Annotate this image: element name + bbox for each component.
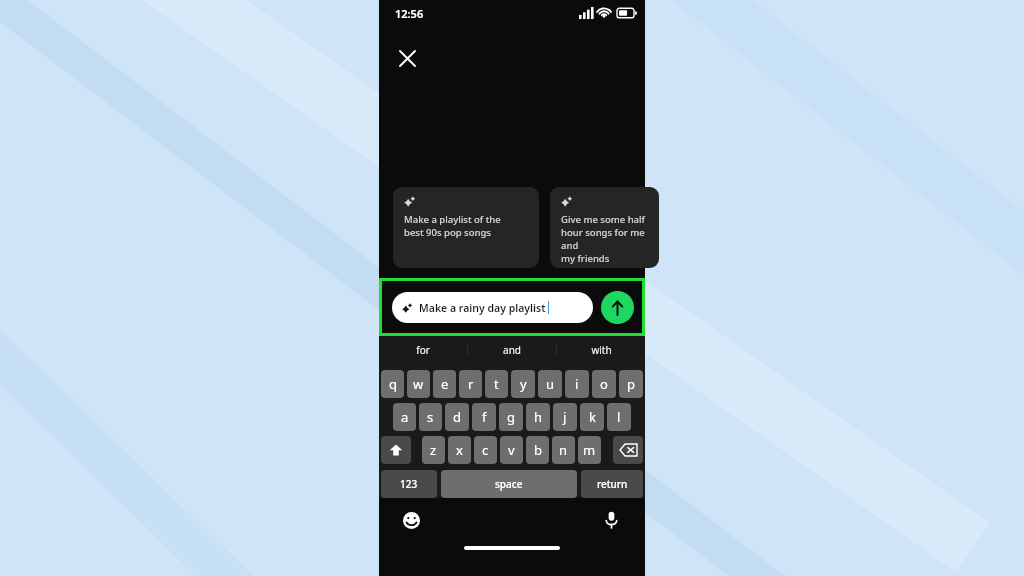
button[interactable]: i <box>565 370 589 398</box>
button[interactable]: a <box>393 403 416 431</box>
staticText: 12:56 <box>395 6 424 21</box>
staticText: m <box>583 441 596 459</box>
staticText: o <box>600 375 608 393</box>
button[interactable]: return <box>581 470 643 498</box>
button[interactable]: w <box>407 370 430 398</box>
staticText: y <box>520 375 527 393</box>
button[interactable]: y <box>511 370 535 398</box>
button[interactable]: Give me some half hour songs for me and … <box>550 187 659 268</box>
staticText: s <box>427 408 434 426</box>
button[interactable]: k <box>580 403 604 431</box>
button[interactable]: Make a rainy day playlist <box>392 292 593 323</box>
staticText: d <box>453 408 461 426</box>
staticText: l <box>617 408 621 426</box>
button[interactable]: e <box>433 370 456 398</box>
button[interactable]: Close <box>387 38 427 78</box>
button[interactable]: Shift <box>381 436 411 464</box>
button[interactable]: u <box>538 370 562 398</box>
staticText: v <box>508 441 515 459</box>
button[interactable]: g <box>499 403 523 431</box>
button[interactable]: z <box>422 436 445 464</box>
staticText: 123 <box>400 477 418 491</box>
staticText: Make a playlist of the best 90s pop song… <box>404 213 501 239</box>
button[interactable]: h <box>526 403 550 431</box>
staticText: g <box>507 408 515 426</box>
button[interactable]: space <box>441 470 577 498</box>
staticText: t <box>494 375 499 393</box>
staticText: p <box>627 375 635 393</box>
button[interactable]: and <box>468 336 556 364</box>
staticText: for <box>416 343 430 357</box>
button[interactable]: o <box>592 370 616 398</box>
button[interactable]: l <box>607 403 631 431</box>
staticText: Make a rainy day playlist <box>419 301 546 315</box>
staticText: w <box>413 375 424 393</box>
button[interactable]: Send <box>601 291 634 324</box>
button[interactable]: s <box>419 403 442 431</box>
button[interactable]: t <box>485 370 508 398</box>
staticText: h <box>534 408 543 426</box>
button[interactable]: j <box>553 403 577 431</box>
button[interactable]: Dictation <box>599 508 623 532</box>
staticText: u <box>546 375 555 393</box>
button[interactable]: p <box>619 370 643 398</box>
button[interactable]: 123 <box>381 470 437 498</box>
staticText: x <box>456 441 463 459</box>
button[interactable]: r <box>459 370 482 398</box>
button[interactable]: c <box>474 436 497 464</box>
staticText: n <box>559 441 568 459</box>
staticText: e <box>441 375 449 393</box>
staticText: f <box>482 408 487 426</box>
staticText: r <box>468 375 474 393</box>
staticText: j <box>563 408 567 426</box>
staticText: b <box>534 441 542 459</box>
button[interactable]: v <box>500 436 523 464</box>
button[interactable]: Backspace <box>613 436 643 464</box>
button[interactable]: with <box>557 336 645 364</box>
button[interactable]: m <box>578 436 601 464</box>
staticText: q <box>389 375 397 393</box>
staticText: and <box>503 343 521 357</box>
button[interactable]: q <box>381 370 404 398</box>
staticText: z <box>430 441 437 459</box>
button[interactable]: n <box>552 436 575 464</box>
button[interactable]: Make a playlist of the best 90s pop song… <box>393 187 539 268</box>
button[interactable]: b <box>526 436 549 464</box>
staticText: k <box>589 408 596 426</box>
staticText: Give me some half hour songs for me and … <box>561 213 651 265</box>
staticText: return <box>597 477 628 491</box>
button[interactable]: Emoji <box>399 508 423 532</box>
staticText: with <box>591 343 612 357</box>
staticText: c <box>482 441 489 459</box>
staticText: space <box>495 477 523 491</box>
staticText: a <box>401 408 409 426</box>
button[interactable]: d <box>445 403 469 431</box>
button[interactable]: f <box>472 403 496 431</box>
button[interactable]: for <box>379 336 467 364</box>
staticText: i <box>575 375 579 393</box>
button[interactable]: x <box>448 436 471 464</box>
